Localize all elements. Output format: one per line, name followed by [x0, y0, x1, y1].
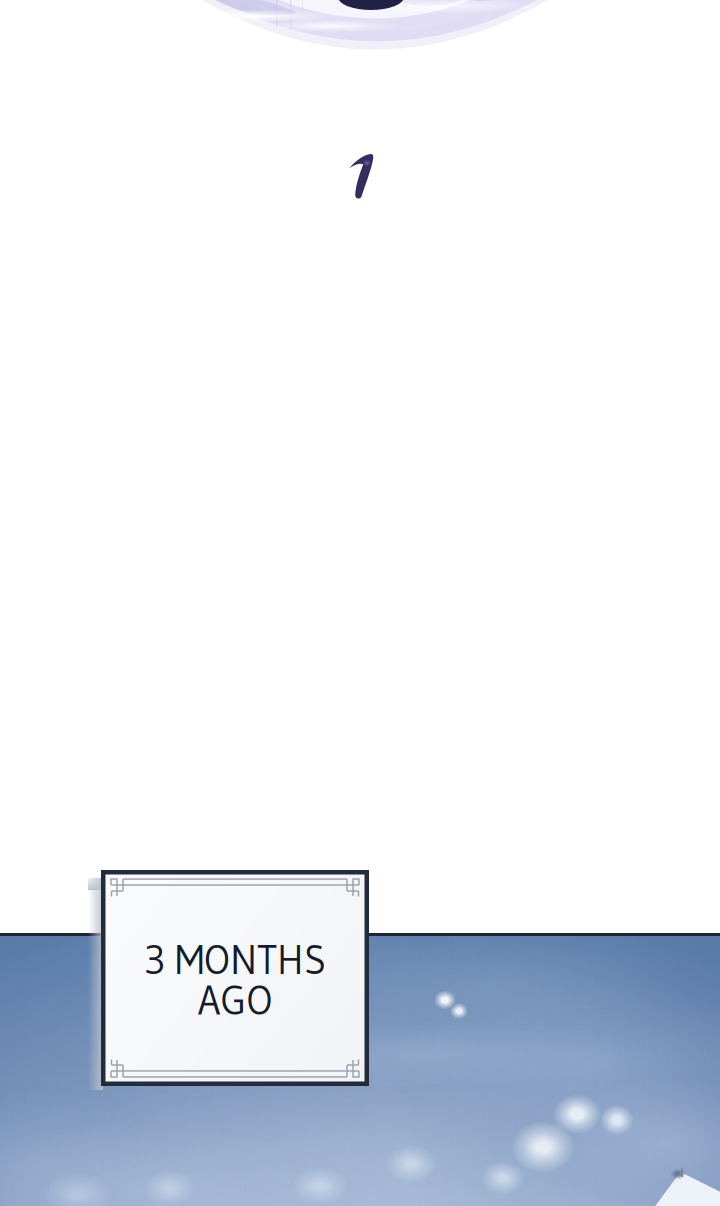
staticText: AGO — [197, 975, 272, 1025]
button[interactable]: 3 MONTHS — [101, 870, 369, 1086]
staticText: 3 MONTHS — [144, 935, 326, 984]
